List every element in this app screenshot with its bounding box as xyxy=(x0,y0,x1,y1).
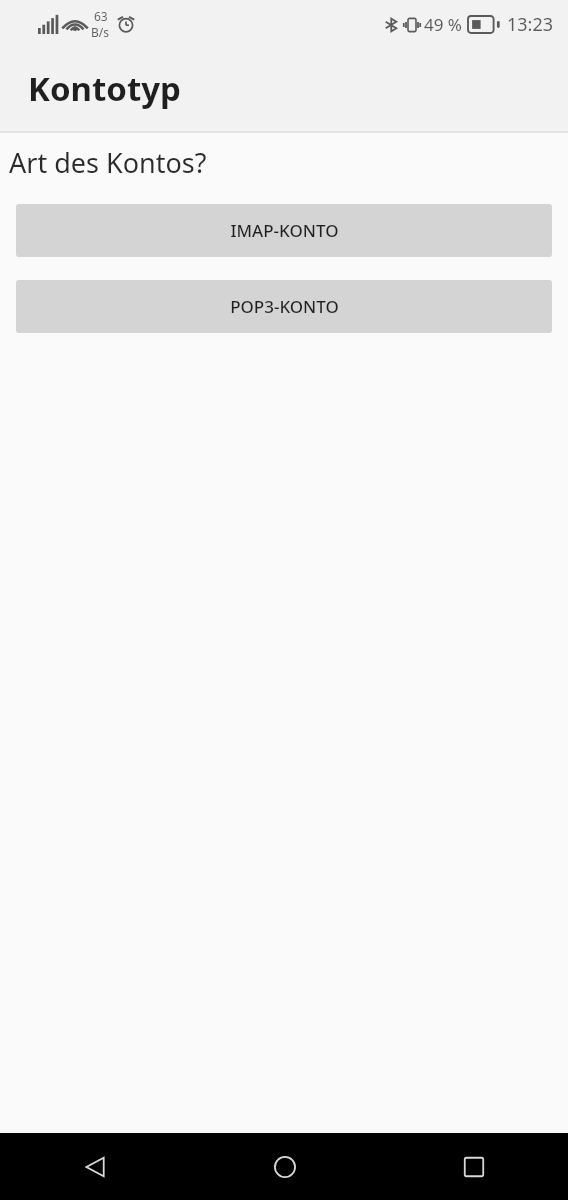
staticText: POP3-KONTO xyxy=(230,295,339,318)
staticText: 63 xyxy=(94,8,108,24)
staticText: B/s xyxy=(91,24,110,40)
staticText: Kontotyp xyxy=(28,66,181,111)
button[interactable]: Recent apps xyxy=(379,1133,568,1200)
staticText: 13:23 xyxy=(507,12,554,37)
button[interactable]: Back xyxy=(0,1133,190,1200)
staticText: Art des Kontos? xyxy=(9,144,207,181)
button[interactable]: Home xyxy=(190,1133,379,1200)
staticText: 49 % xyxy=(424,13,462,36)
button[interactable]: IMAP-KONTO xyxy=(16,204,552,257)
button[interactable]: POP3-KONTO xyxy=(16,280,552,333)
staticText: IMAP-KONTO xyxy=(230,219,339,242)
